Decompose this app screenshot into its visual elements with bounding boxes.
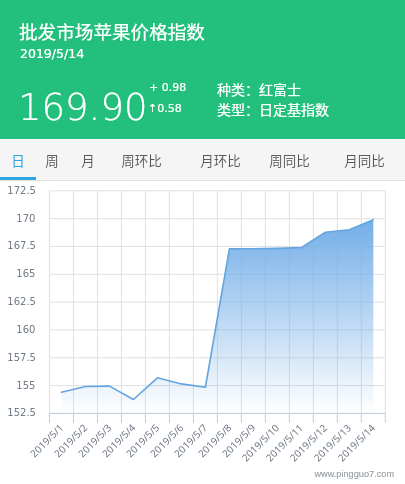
button[interactable]: 周环比 xyxy=(112,139,170,180)
staticText: 2019/5/14 xyxy=(20,46,85,61)
button[interactable]: 月同比 xyxy=(335,139,393,180)
staticText: 日 xyxy=(11,150,25,170)
staticText: 周 xyxy=(45,150,59,170)
staticText: 类型：日定基指数 xyxy=(217,99,329,119)
button[interactable]: 周同比 xyxy=(260,139,318,180)
button[interactable]: 周 xyxy=(37,139,67,180)
button[interactable]: 日 xyxy=(3,139,33,180)
staticText: 周环比 xyxy=(121,150,162,170)
button[interactable]: 月环比 xyxy=(191,139,249,180)
staticText: 月同比 xyxy=(344,150,385,170)
staticText: 月环比 xyxy=(200,150,241,170)
staticText: 周同比 xyxy=(269,150,310,170)
staticText: 月 xyxy=(81,150,95,170)
staticText: 169.90 xyxy=(18,86,148,129)
button[interactable]: 月 xyxy=(73,139,103,180)
staticText: + 0.98 xyxy=(149,81,187,94)
staticText: 批发市场苹果价格指数 xyxy=(19,17,205,44)
staticText: ↑0.58 xyxy=(148,102,182,115)
staticText: 种类：红富士 xyxy=(217,79,301,99)
